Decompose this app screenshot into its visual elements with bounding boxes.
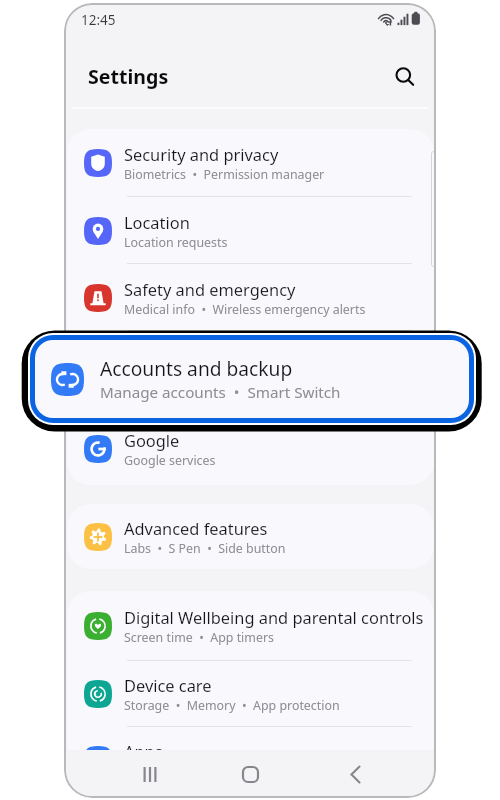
staticText: Google [124,429,180,451]
staticText: Manage accounts • Smart Switch [100,382,341,403]
staticText: Accounts and backup [100,355,293,381]
staticText: Location requests [124,234,228,251]
button[interactable]: Home [229,753,271,795]
staticText: Accounts and backup [124,352,289,374]
staticText: Safety and emergency [124,278,296,300]
staticText: Advanced features [124,517,268,539]
button[interactable]: Advanced features [67,504,434,569]
button[interactable]: Accounts and backup [35,340,469,418]
staticText: Storage • Memory • App protection [124,697,340,714]
staticText: 12:45 [81,11,116,29]
button[interactable]: Device care [67,661,434,727]
button[interactable]: Google [67,412,434,485]
button[interactable]: Search [395,67,421,93]
staticText: Default apps [124,763,198,780]
button[interactable]: Safety and emergency [67,264,434,331]
staticText: Digital Wellbeing and parental controls [124,606,424,628]
staticText: Device care [124,674,212,696]
button[interactable]: Accounts and backup [67,331,434,412]
staticText: Screen time • App timers [124,629,274,646]
button[interactable]: Digital Wellbeing and parental controls [67,591,434,661]
button[interactable]: Back [329,753,371,795]
button[interactable]: Recents [130,753,172,795]
staticText: Manage accounts • Smart Switch [124,375,321,392]
button[interactable]: Location [67,197,434,264]
button[interactable]: Apps [67,727,434,793]
staticText: Google services [124,452,216,469]
staticText: Labs • S Pen • Side button [124,540,286,557]
staticText: Location [124,211,190,233]
staticText: Security and privacy [124,143,279,165]
staticText: Settings [88,63,169,90]
staticText: Biometrics • Permission manager [124,166,325,183]
staticText: Medical info • Wireless emergency alerts [124,301,366,318]
button[interactable]: Security and privacy [67,129,434,197]
staticText: Apps [124,740,163,762]
